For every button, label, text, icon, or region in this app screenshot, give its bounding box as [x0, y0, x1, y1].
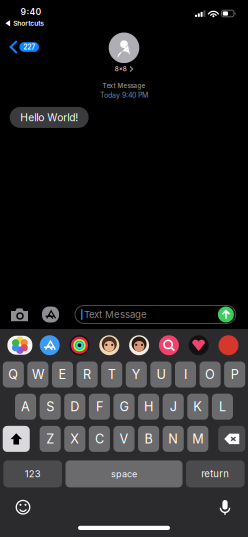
staticText: U [156, 367, 165, 382]
button[interactable]: K [187, 394, 208, 420]
staticText: D [70, 399, 79, 414]
button[interactable]: Dictate [212, 494, 238, 520]
button[interactable]: U [150, 361, 171, 387]
staticText: O [205, 367, 215, 382]
staticText: E [58, 367, 66, 382]
button[interactable]: M [187, 426, 208, 452]
staticText: S [46, 399, 54, 414]
button[interactable]: Q [3, 361, 24, 387]
staticText: 9:40 [20, 7, 41, 17]
button[interactable]: C [89, 426, 110, 452]
staticText: 123 [25, 468, 41, 480]
staticText: N [168, 431, 178, 446]
staticText: W [32, 367, 44, 382]
button[interactable]: E [52, 361, 73, 387]
staticText: T [108, 367, 116, 382]
button[interactable]: Y [126, 361, 147, 387]
staticText: M [192, 431, 203, 446]
button[interactable]: iMessage app [5, 333, 35, 358]
staticText: Text Message [84, 309, 147, 320]
button[interactable]: iMessage app [35, 333, 65, 358]
staticText: 227 [23, 43, 35, 51]
staticText: J [170, 399, 177, 414]
staticText: Q [8, 367, 18, 382]
button[interactable]: V [113, 426, 135, 452]
staticText: Hello World! [20, 111, 78, 124]
button[interactable]: 8x8 [109, 32, 139, 72]
button[interactable]: 123 [3, 460, 62, 487]
button[interactable]: iMessage app [94, 333, 124, 358]
button[interactable]: iMessage app [65, 333, 94, 358]
staticText: V [119, 431, 128, 446]
staticText: space [111, 468, 137, 479]
staticText: 8x8 [115, 65, 127, 73]
button[interactable]: G [113, 394, 135, 420]
button[interactable]: T [101, 361, 122, 387]
button[interactable]: 227 [0, 38, 43, 56]
button[interactable]: H [138, 394, 159, 420]
staticText: B [145, 431, 153, 446]
staticText: L [219, 399, 226, 414]
staticText: F [96, 399, 103, 414]
button[interactable]: Delete [218, 426, 245, 452]
button[interactable]: Z [40, 426, 61, 452]
button[interactable]: D [64, 394, 85, 420]
button[interactable]: iMessage app [184, 333, 214, 358]
staticText: H [144, 399, 153, 414]
button[interactable]: Emoji [10, 494, 36, 520]
button[interactable]: iMessage app [214, 333, 243, 358]
staticText: I [184, 367, 187, 382]
button[interactable]: P [224, 361, 245, 387]
button[interactable]: N [163, 426, 184, 452]
button[interactable]: iMessage app [154, 333, 184, 358]
button[interactable]: F [89, 394, 110, 420]
button[interactable]: L [212, 394, 233, 420]
staticText: K [193, 399, 202, 414]
staticText: C [95, 431, 104, 446]
staticText: Text Message [102, 82, 145, 89]
button[interactable]: space [65, 460, 182, 487]
button[interactable]: Shift [3, 426, 30, 452]
button[interactable]: B [138, 426, 159, 452]
staticText: Y [132, 367, 141, 382]
staticText: return [201, 468, 229, 480]
staticText: Z [46, 431, 54, 446]
button[interactable]: S [40, 394, 61, 420]
button[interactable]: Camera [11, 303, 39, 325]
button[interactable]: O [200, 361, 221, 387]
staticText: A [21, 399, 30, 414]
button[interactable]: R [77, 361, 98, 387]
staticText: X [70, 431, 79, 446]
button[interactable]: Send [218, 306, 234, 322]
staticText: R [83, 367, 91, 382]
staticText: Today 9:40 PM [100, 91, 148, 99]
staticText: G [119, 399, 128, 414]
staticText: Shortcuts [13, 19, 44, 27]
button[interactable]: A [15, 394, 36, 420]
button[interactable]: return [186, 460, 245, 487]
button[interactable]: J [163, 394, 184, 420]
button[interactable]: I [175, 361, 196, 387]
button[interactable]: App Store [39, 303, 75, 325]
staticText: P [231, 367, 239, 382]
button[interactable]: X [64, 426, 85, 452]
button[interactable]: iMessage app [124, 333, 154, 358]
button[interactable]: W [27, 361, 48, 387]
